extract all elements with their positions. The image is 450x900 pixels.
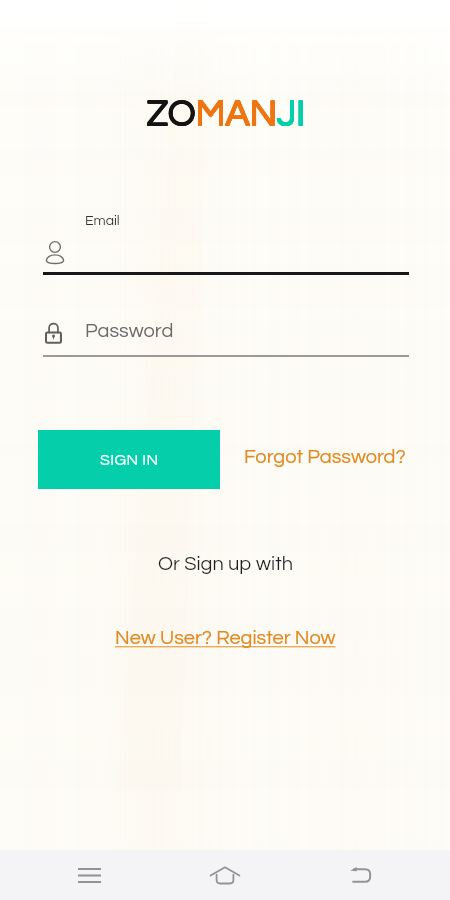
- staticText: ZOMANJI: [146, 96, 305, 134]
- staticText: Email: [85, 214, 120, 228]
- staticText: ZOMANJI: [147, 96, 306, 134]
- button[interactable]: SIGN IN: [38, 430, 220, 489]
- staticText: New User? Register Now: [115, 628, 336, 649]
- staticText: ZOMANJI: [146, 96, 305, 134]
- staticText: ZOMANJI: [147, 96, 306, 134]
- button[interactable]: Back: [322, 850, 402, 900]
- staticText: SIGN IN: [100, 452, 159, 468]
- staticText: Or Sign up with: [158, 554, 293, 575]
- button[interactable]: Forgot Password?: [238, 441, 412, 474]
- staticText: Password: [85, 321, 174, 342]
- button[interactable]: Home: [185, 850, 265, 900]
- staticText: ZOMANJI: [146, 95, 305, 133]
- staticText: ZOMANJI: [147, 96, 306, 134]
- staticText: ZOMANJI: [147, 96, 306, 134]
- button[interactable]: Recent apps: [49, 850, 129, 900]
- staticText: ZOMANJI: [147, 95, 306, 133]
- staticText: Forgot Password?: [244, 447, 406, 468]
- staticText: ZOMANJI: [147, 95, 306, 133]
- button[interactable]: New User? Register Now: [109, 623, 342, 654]
